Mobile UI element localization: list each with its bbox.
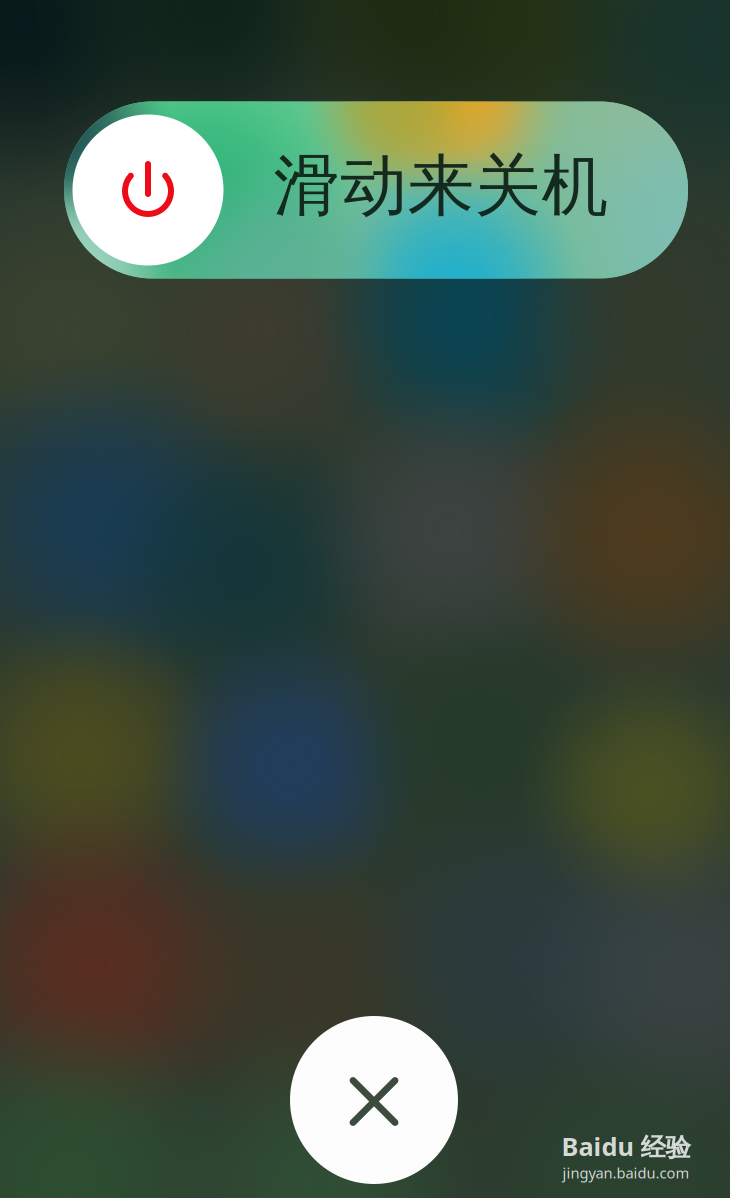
staticText: Baidu 经验 <box>561 1129 690 1163</box>
staticText: jingyan.baidu.com <box>562 1163 689 1183</box>
button[interactable]: 取消 <box>290 1016 458 1184</box>
button[interactable]: 滑动来关机 <box>64 101 688 278</box>
staticText: 滑动来关机 <box>273 145 608 227</box>
